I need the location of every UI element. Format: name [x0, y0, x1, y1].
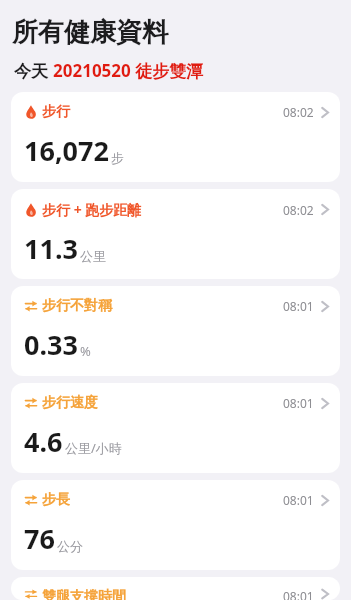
other: Show details — [321, 300, 329, 313]
staticText: 步長 — [42, 491, 70, 509]
staticText: 步行不對稱 — [42, 297, 112, 315]
other: Show details — [321, 397, 329, 410]
staticText: 0.33 — [24, 326, 78, 363]
staticText: 11.3 — [24, 230, 78, 267]
staticText: 步行速度 — [42, 394, 98, 412]
staticText: 雙腿支撐時間 — [42, 588, 126, 600]
staticText: 08:01 — [283, 298, 314, 314]
staticText: 20210520 徒步雙潭 — [53, 59, 204, 82]
other: Show details — [321, 588, 329, 600]
staticText: 公里 — [80, 248, 106, 264]
button[interactable]: 步行速度 — [11, 383, 340, 473]
staticText: 步行 — [42, 103, 70, 121]
staticText: 4.6 — [24, 423, 63, 460]
other: Show details — [321, 106, 329, 119]
staticText: 步行 + 跑步距離 — [42, 200, 142, 219]
staticText: 76 — [24, 520, 55, 557]
staticText: 08:01 — [283, 588, 314, 600]
staticText: 08:02 — [283, 202, 314, 218]
staticText: 16,072 — [24, 132, 109, 169]
staticText: 步 — [111, 150, 124, 166]
staticText: 今天 — [14, 59, 53, 82]
staticText: % — [80, 342, 91, 360]
button[interactable]: 步行 + 跑步距離 — [11, 189, 340, 279]
staticText: 08:01 — [283, 492, 314, 508]
other: Show details — [321, 203, 329, 216]
button[interactable]: 步行不對稱 — [11, 286, 340, 376]
other: Show details — [321, 494, 329, 507]
button[interactable]: 步長 — [11, 480, 340, 570]
button[interactable]: 步行 — [11, 92, 340, 182]
staticText: 08:01 — [283, 395, 314, 411]
button[interactable]: 雙腿支撐時間 — [11, 577, 340, 600]
staticText: 公里/小時 — [65, 439, 122, 457]
staticText: 08:02 — [283, 104, 314, 120]
staticText: 公分 — [57, 538, 83, 554]
staticText: 所有健康資料 — [12, 16, 168, 49]
